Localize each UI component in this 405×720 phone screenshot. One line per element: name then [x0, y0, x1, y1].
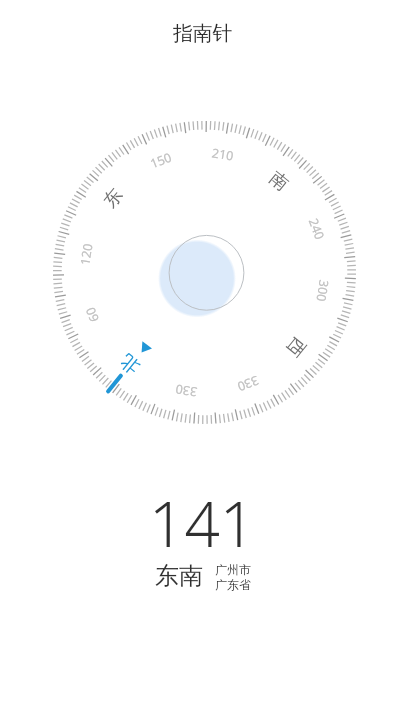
staticText: 150: [148, 149, 174, 172]
staticText: 120: [76, 242, 97, 266]
staticText: 300: [312, 279, 333, 303]
staticText: 南: [264, 167, 293, 196]
staticText: 60: [82, 304, 103, 324]
staticText: 指南针: [173, 21, 233, 46]
staticText: 141: [149, 481, 256, 565]
staticText: 东: [99, 184, 128, 213]
staticText: 330: [234, 372, 261, 395]
staticText: 330: [174, 380, 198, 401]
staticText: 西: [281, 332, 310, 361]
staticText: 广州市: [215, 562, 251, 577]
staticText: 北: [116, 349, 145, 378]
staticText: 东南: [155, 561, 203, 591]
staticText: 210: [211, 144, 235, 165]
staticText: 广东省: [215, 577, 251, 592]
staticText: 240: [305, 216, 328, 242]
